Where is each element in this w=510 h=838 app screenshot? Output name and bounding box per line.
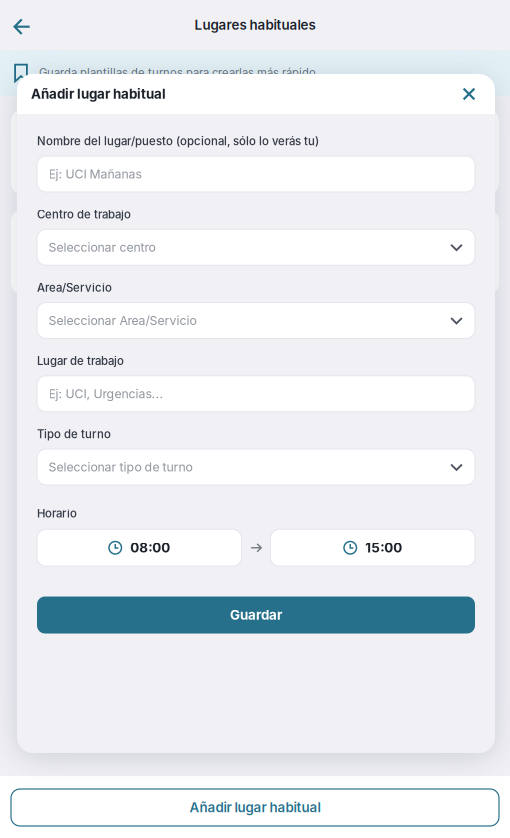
button[interactable]: Ej: UCI Mañanas <box>37 156 475 192</box>
button[interactable]: 15:00 <box>270 529 475 566</box>
button[interactable]: Back <box>2 3 42 47</box>
button[interactable]: Añadir lugar habitual <box>11 789 499 826</box>
staticText: Guardar <box>230 607 282 623</box>
button[interactable]: Guardar <box>37 596 475 633</box>
staticText: Seleccionar Area/Servicio <box>48 313 196 328</box>
staticText: Ej: UCI, Urgencias... <box>48 386 163 401</box>
button[interactable]: 08:00 <box>37 529 241 566</box>
staticText: Lugar de trabajo <box>37 354 124 368</box>
button[interactable]: Seleccionar tipo de turno <box>37 449 475 485</box>
staticText: Añadir lugar habitual <box>189 799 320 815</box>
button[interactable]: Seleccionar centro <box>37 229 475 265</box>
staticText: Horario <box>37 506 77 520</box>
staticText: Seleccionar tipo de turno <box>48 460 192 474</box>
staticText: 08:00 <box>130 540 170 556</box>
staticText: Area/Servicio <box>37 281 112 294</box>
staticText: Nombre del lugar/puesto (opcional, sólo … <box>37 134 319 148</box>
staticText: Tipo de turno <box>37 427 111 441</box>
staticText: Añadir lugar habitual <box>31 86 166 102</box>
staticText: Seleccionar centro <box>48 240 155 255</box>
staticText: Ej: UCI Mañanas <box>48 167 141 181</box>
staticText: 15:00 <box>365 540 402 556</box>
button[interactable]: Seleccionar Area/Servicio <box>37 302 475 338</box>
button[interactable]: Ej: UCI, Urgencias... <box>37 376 475 412</box>
staticText: Centro de trabajo <box>37 207 131 221</box>
staticText: Lugares habituales <box>194 17 315 33</box>
button[interactable]: Close <box>455 80 483 108</box>
staticText: Guarda plantillas de turnos para crearla… <box>39 66 316 80</box>
